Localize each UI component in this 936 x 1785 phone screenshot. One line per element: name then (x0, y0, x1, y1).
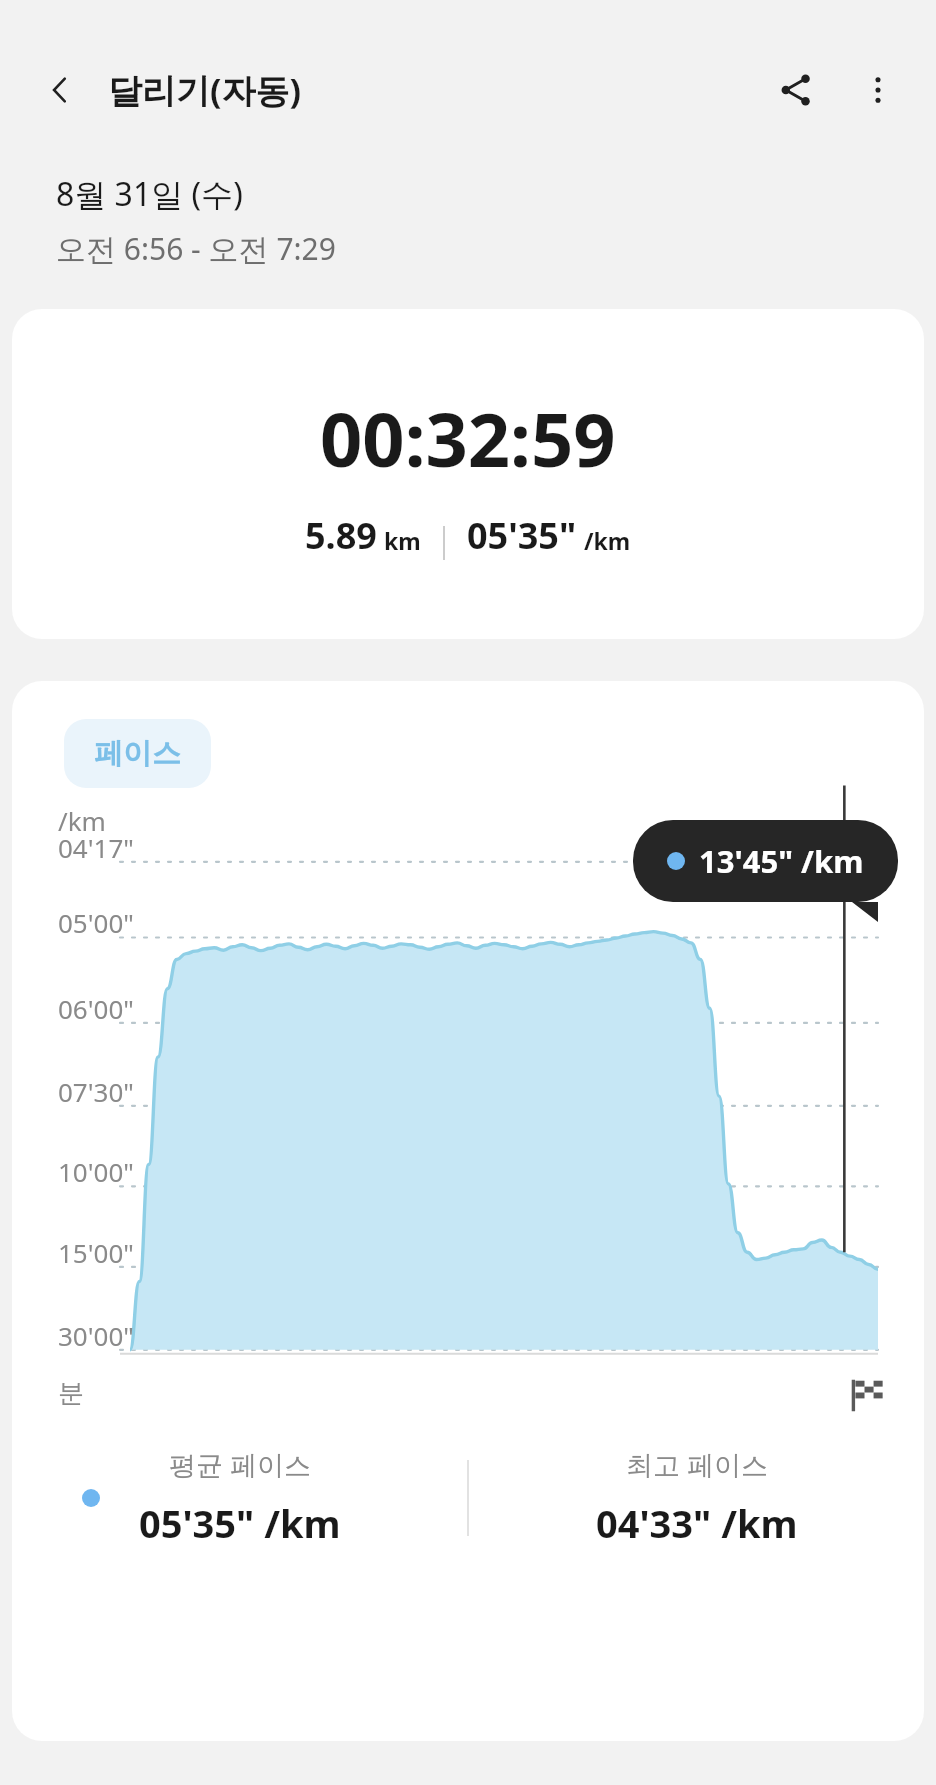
staticText: /km (58, 803, 106, 838)
other: Finish (850, 1378, 884, 1412)
button[interactable]: 13'45" /km (633, 820, 898, 902)
staticText: 15'00" (58, 1235, 134, 1270)
staticText: 10'00" (58, 1154, 134, 1189)
staticText: 5.89 (305, 511, 377, 560)
button[interactable]: 페이스 (64, 719, 211, 788)
staticText: 달리기(자동) (108, 67, 302, 113)
button[interactable]: 00:32:59 (12, 309, 924, 639)
staticText: 00:32:59 (320, 388, 616, 489)
button[interactable]: 평균 페이스 (12, 1446, 467, 1549)
staticText: 06'00" (58, 991, 134, 1026)
button[interactable]: Back (36, 66, 84, 114)
staticText: 04'17" (58, 830, 134, 865)
button[interactable]: Share (764, 58, 828, 122)
button[interactable]: More options (846, 58, 910, 122)
staticText: 07'30" (58, 1074, 134, 1109)
staticText: 05'35" /km (139, 1497, 341, 1549)
staticText: 13'45" /km (699, 840, 864, 882)
staticText: 평균 페이스 (169, 1446, 312, 1483)
staticText: km (384, 525, 421, 556)
staticText: 05'35" (467, 511, 577, 560)
staticText: 페이스 (94, 735, 181, 772)
staticText: 최고 페이스 (626, 1446, 769, 1483)
staticText: 8월 31일 (수) (56, 172, 243, 216)
staticText: 분 (58, 1377, 84, 1410)
staticText: 30'00" (58, 1318, 134, 1353)
staticText: 오전 6:56 - 오전 7:29 (56, 228, 336, 269)
staticText: /km (584, 525, 631, 556)
staticText: 05'00" (58, 905, 134, 940)
staticText: 04'33" /km (596, 1497, 798, 1549)
button[interactable]: 최고 페이스 (469, 1446, 924, 1549)
